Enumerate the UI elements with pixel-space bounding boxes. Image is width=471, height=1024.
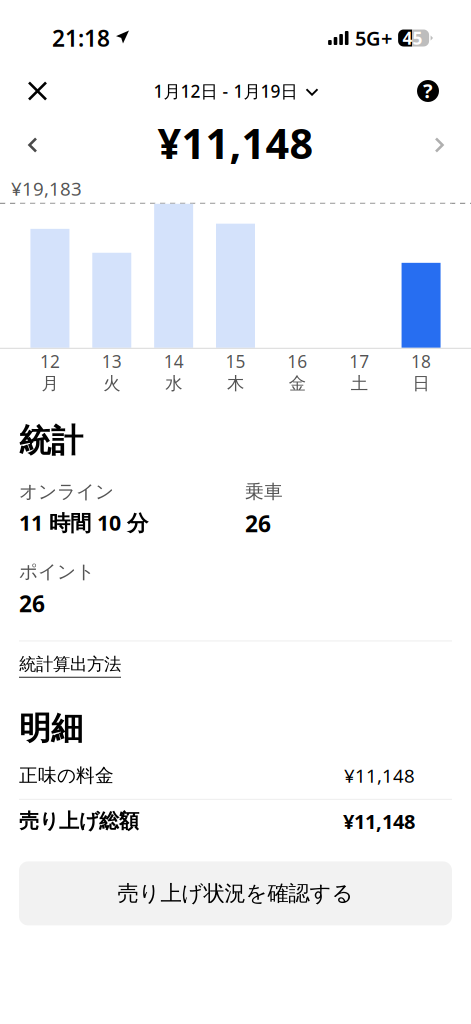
staticText: 16 bbox=[287, 350, 307, 373]
staticText: 26 bbox=[245, 508, 271, 538]
button[interactable]: 1月12日 - 1月19日 bbox=[145, 69, 325, 112]
staticText: 26 bbox=[19, 588, 45, 618]
staticText: 金 bbox=[289, 373, 306, 394]
staticText: 15 bbox=[225, 350, 245, 373]
staticText: 月 bbox=[41, 373, 58, 394]
staticText: 11 時間 10 分 bbox=[19, 508, 148, 537]
staticText: 水 bbox=[165, 373, 182, 394]
button[interactable]: 売り上げ状況を確認する bbox=[19, 861, 452, 925]
staticText: 統計算出方法 bbox=[19, 653, 121, 675]
staticText: 木 bbox=[227, 373, 244, 394]
button[interactable]: Help bbox=[405, 68, 458, 114]
staticText: 売り上げ総額 bbox=[19, 809, 139, 833]
staticText: ¥11,148 bbox=[343, 808, 415, 834]
staticText: 1月12日 - 1月19日 bbox=[153, 79, 297, 102]
staticText: 13 bbox=[102, 350, 122, 373]
staticText: オンライン bbox=[19, 480, 114, 503]
staticText: 日 bbox=[413, 373, 430, 394]
staticText: 明細 bbox=[19, 709, 83, 748]
staticText: ¥11,148 bbox=[157, 116, 313, 170]
staticText: 14 bbox=[164, 350, 184, 373]
staticText: 土 bbox=[351, 373, 368, 394]
staticText: 統計 bbox=[19, 421, 83, 460]
button[interactable]: 統計算出方法 bbox=[19, 641, 121, 682]
staticText: 売り上げ状況を確認する bbox=[117, 880, 353, 906]
staticText: 12 bbox=[40, 350, 60, 373]
staticText: ¥11,148 bbox=[344, 763, 415, 788]
staticText: 乗車 bbox=[245, 480, 283, 503]
staticText: 5G+ bbox=[355, 25, 392, 51]
staticText: 火 bbox=[103, 373, 120, 394]
staticText: ¥19,183 bbox=[11, 176, 82, 201]
staticText: 45 bbox=[403, 26, 423, 49]
staticText: ポイント bbox=[19, 560, 95, 583]
button[interactable]: Close bbox=[13, 67, 60, 114]
staticText: 18 bbox=[411, 350, 431, 373]
button[interactable]: Next week bbox=[421, 131, 460, 176]
staticText: 21:18 bbox=[52, 23, 110, 53]
staticText: 正味の料金 bbox=[19, 764, 114, 787]
staticText: ? bbox=[423, 77, 433, 104]
staticText: 17 bbox=[349, 350, 369, 373]
button[interactable]: Previous week bbox=[11, 131, 50, 176]
